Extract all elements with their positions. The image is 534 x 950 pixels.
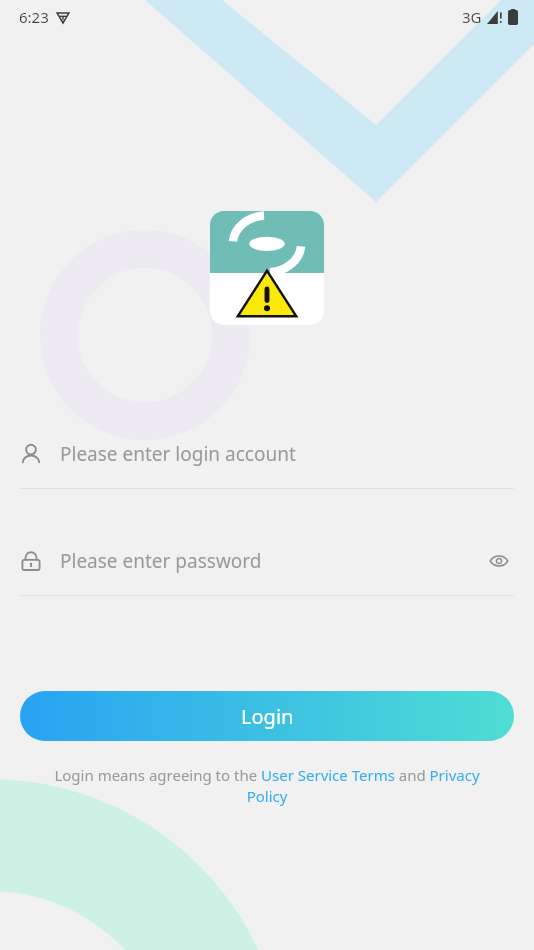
staticText: 3G (462, 7, 482, 27)
staticText: Login (241, 703, 294, 730)
button[interactable]: Login means agreeing to the User Service… (34, 765, 500, 807)
staticText: Please enter password (60, 548, 484, 574)
button[interactable]: Login (20, 691, 514, 741)
button[interactable]: Show password (484, 546, 514, 576)
staticText: Login means agreeing to the User Service… (34, 765, 500, 807)
button[interactable]: Please enter password (20, 539, 514, 596)
staticText: Please enter login account (60, 441, 514, 467)
staticText: 6:23 (19, 7, 49, 27)
button[interactable]: Please enter login account (20, 432, 514, 489)
